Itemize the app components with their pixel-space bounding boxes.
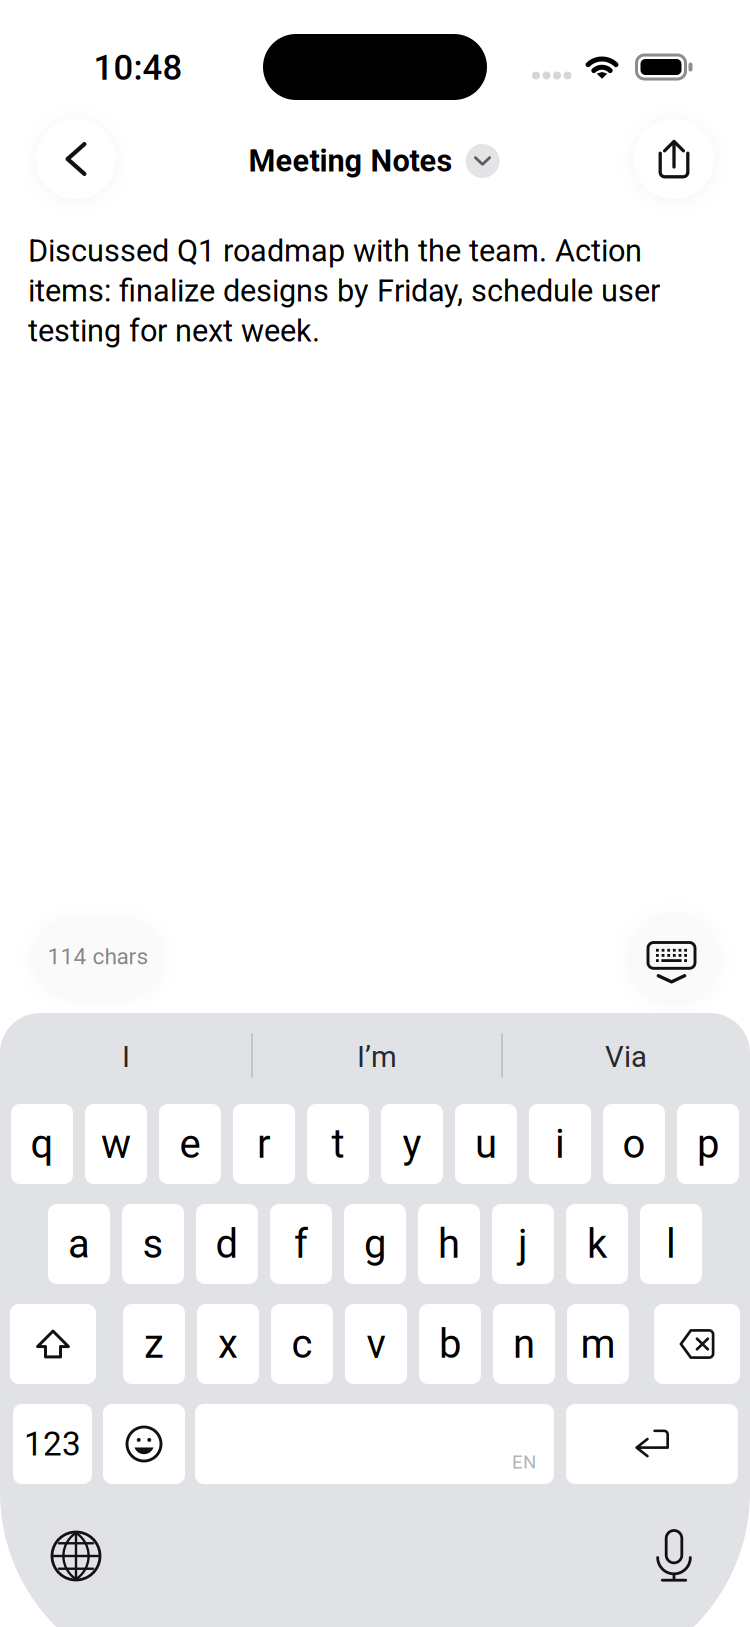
- button[interactable]: s: [122, 1204, 184, 1284]
- button[interactable]: I’m: [252, 1013, 502, 1101]
- staticText: p: [697, 1121, 719, 1167]
- button[interactable]: h: [418, 1204, 480, 1284]
- staticText: I: [122, 1040, 130, 1074]
- staticText: i: [555, 1121, 565, 1167]
- button[interactable]: Share: [634, 119, 714, 199]
- button[interactable]: o: [603, 1104, 665, 1184]
- staticText: Discussed Q1 roadmap with the team. Acti…: [28, 233, 642, 269]
- button[interactable]: e: [159, 1104, 221, 1184]
- button[interactable]: Space: [195, 1404, 554, 1484]
- staticText: items: finalize designs by Friday, sched…: [28, 273, 660, 309]
- staticText: 10:48: [93, 48, 182, 88]
- staticText: b: [439, 1321, 461, 1367]
- button[interactable]: Emoji: [103, 1404, 185, 1484]
- button[interactable]: j: [492, 1204, 554, 1284]
- button[interactable]: Via: [502, 1013, 750, 1101]
- button[interactable]: Next keyboard: [42, 1522, 110, 1590]
- staticText: Meeting Notes: [248, 143, 452, 179]
- staticText: 123: [24, 1424, 81, 1464]
- staticText: n: [513, 1321, 535, 1367]
- staticText: g: [364, 1221, 386, 1267]
- button[interactable]: g: [344, 1204, 406, 1284]
- staticText: x: [218, 1321, 238, 1367]
- button[interactable]: f: [270, 1204, 332, 1284]
- staticText: e: [179, 1121, 200, 1167]
- staticText: y: [402, 1121, 421, 1167]
- button[interactable]: p: [677, 1104, 739, 1184]
- staticText: o: [622, 1121, 645, 1167]
- button[interactable]: x: [197, 1304, 259, 1384]
- button[interactable]: m: [567, 1304, 629, 1384]
- button[interactable]: z: [123, 1304, 185, 1384]
- button[interactable]: Dictate: [640, 1522, 708, 1590]
- staticText: q: [30, 1121, 53, 1167]
- button[interactable]: v: [345, 1304, 407, 1384]
- staticText: v: [366, 1321, 385, 1367]
- button[interactable]: b: [419, 1304, 481, 1384]
- button[interactable]: i: [529, 1104, 591, 1184]
- staticText: I’m: [357, 1040, 397, 1074]
- staticText: c: [291, 1321, 312, 1367]
- button[interactable]: a: [48, 1204, 110, 1284]
- staticText: a: [68, 1221, 90, 1267]
- staticText: 114 chars: [47, 943, 148, 970]
- button[interactable]: l: [640, 1204, 702, 1284]
- button[interactable]: y: [381, 1104, 443, 1184]
- button[interactable]: Shift: [10, 1304, 96, 1384]
- staticText: d: [215, 1221, 238, 1267]
- button[interactable]: d: [196, 1204, 258, 1284]
- button[interactable]: r: [233, 1104, 295, 1184]
- staticText: w: [101, 1121, 131, 1167]
- staticText: z: [144, 1321, 164, 1367]
- button[interactable]: Meeting Notes: [174, 131, 574, 191]
- button[interactable]: k: [566, 1204, 628, 1284]
- button[interactable]: Hide keyboard: [630, 914, 717, 1001]
- staticText: r: [257, 1121, 271, 1167]
- button[interactable]: Delete: [654, 1304, 740, 1384]
- staticText: testing for next week.: [28, 313, 320, 349]
- staticText: EN: [512, 1451, 536, 1473]
- staticText: s: [142, 1221, 163, 1267]
- staticText: u: [475, 1121, 497, 1167]
- button[interactable]: I: [0, 1013, 252, 1101]
- staticText: m: [580, 1321, 615, 1367]
- button[interactable]: Return: [566, 1404, 738, 1484]
- staticText: h: [438, 1221, 460, 1267]
- staticText: t: [331, 1121, 344, 1167]
- staticText: Via: [605, 1040, 647, 1074]
- button[interactable]: u: [455, 1104, 517, 1184]
- staticText: j: [518, 1221, 528, 1267]
- staticText: l: [666, 1221, 676, 1267]
- button[interactable]: Back: [36, 119, 116, 199]
- button[interactable]: c: [271, 1304, 333, 1384]
- staticText: k: [587, 1221, 607, 1267]
- button[interactable]: n: [493, 1304, 555, 1384]
- button[interactable]: t: [307, 1104, 369, 1184]
- button[interactable]: 123: [13, 1404, 92, 1484]
- staticText: f: [294, 1221, 308, 1267]
- button[interactable]: q: [11, 1104, 73, 1184]
- button[interactable]: w: [85, 1104, 147, 1184]
